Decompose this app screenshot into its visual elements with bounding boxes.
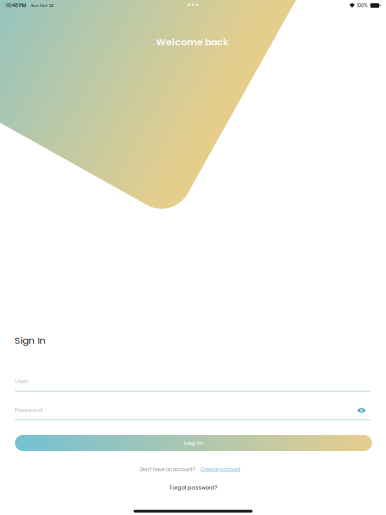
staticText: User <box>15 377 28 385</box>
staticText: 100% <box>357 2 368 9</box>
staticText: 10:48 PM <box>6 2 26 9</box>
staticText: Welcome back <box>156 35 229 49</box>
staticText: Sun Oct 24 <box>31 3 54 8</box>
button[interactable]: Log In <box>15 435 372 451</box>
staticText: Create account <box>200 466 240 473</box>
button[interactable]: Create account <box>200 466 240 473</box>
staticText: Password <box>14 406 42 414</box>
staticText: Sign In <box>14 334 45 347</box>
button[interactable]: Show password <box>352 402 370 418</box>
staticText: Forgot password? <box>169 484 217 491</box>
staticText: Log In <box>184 439 203 447</box>
button[interactable]: Forgot password? <box>169 484 217 491</box>
staticText: Don't have an account? <box>140 466 196 473</box>
